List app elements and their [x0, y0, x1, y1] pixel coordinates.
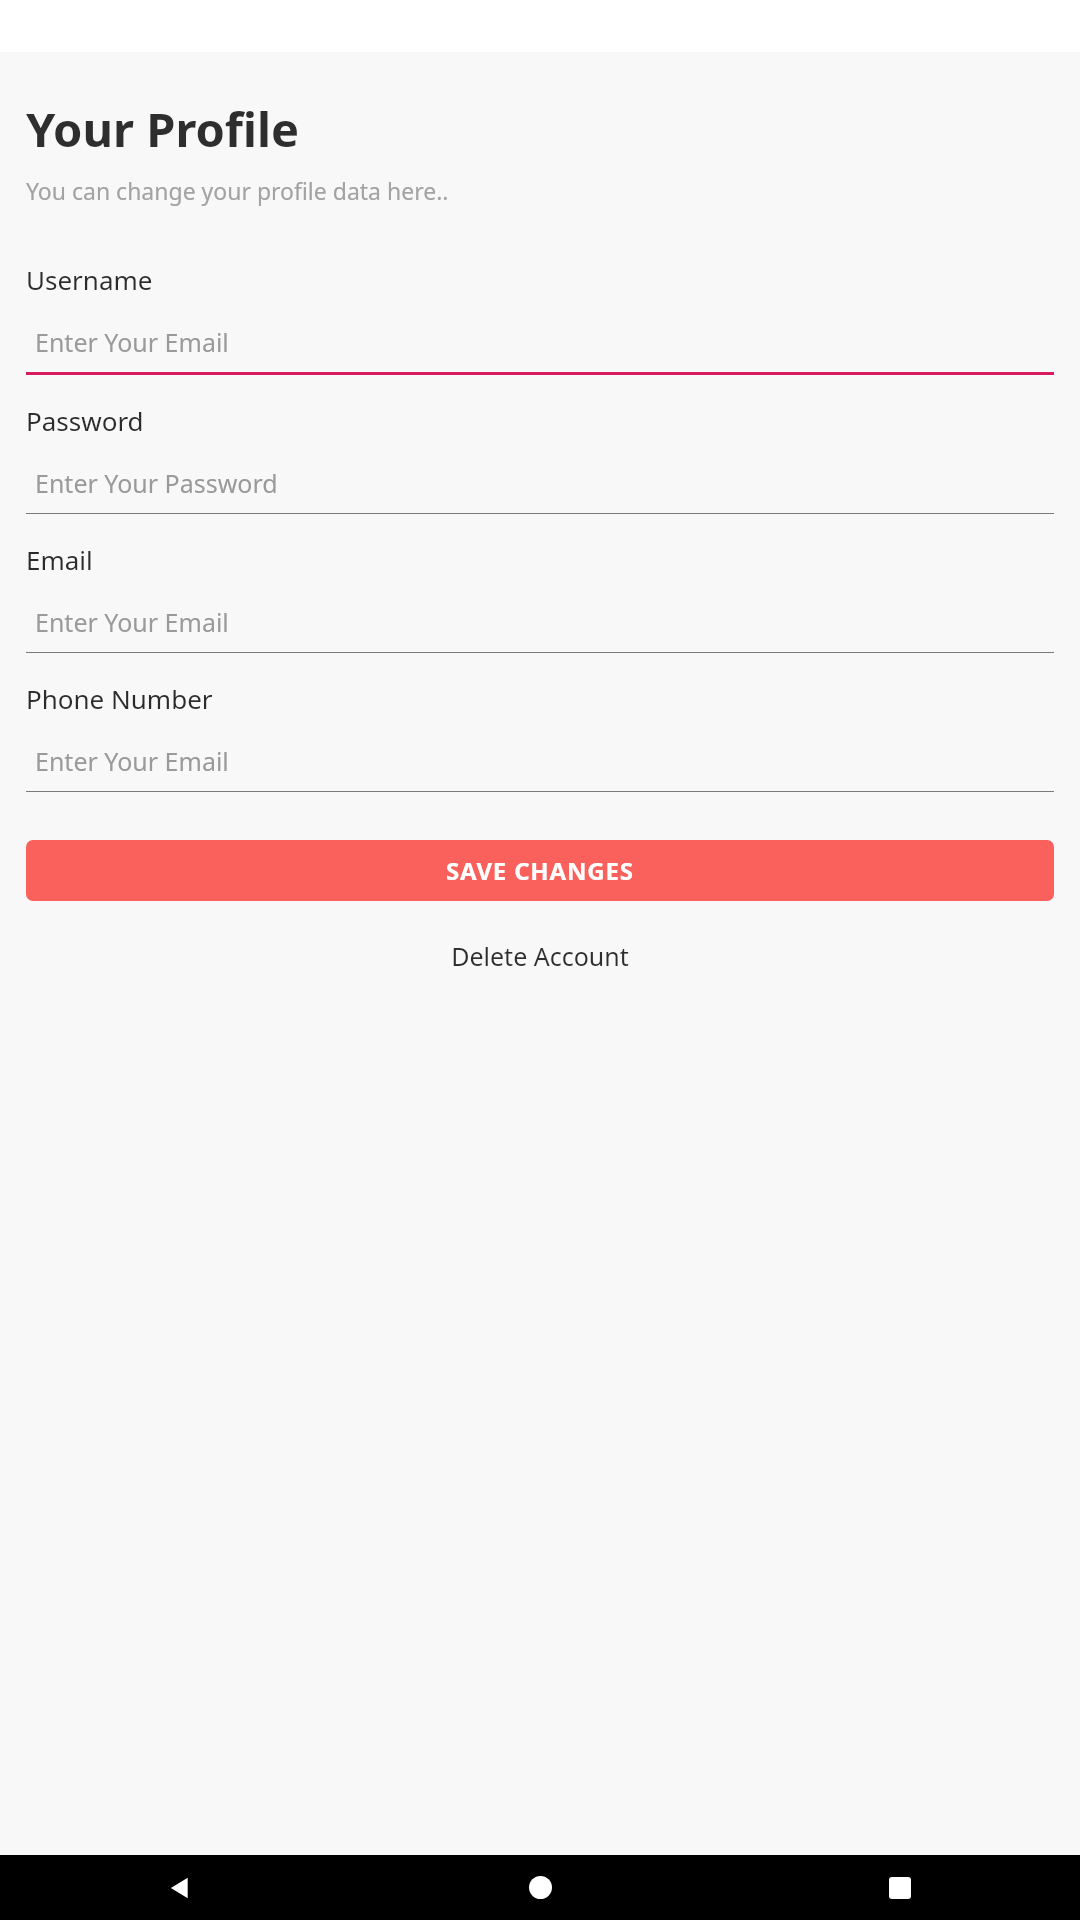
button[interactable]: Username	[26, 262, 1054, 375]
button[interactable]: Back	[0, 1855, 360, 1920]
staticText: Enter Your Email	[35, 744, 229, 778]
staticText: You can change your profile data here..	[26, 175, 449, 206]
staticText: Username	[26, 262, 153, 297]
button[interactable]: Password	[26, 403, 1054, 514]
button[interactable]: Phone Number	[26, 681, 1054, 792]
button[interactable]: Home	[360, 1855, 720, 1920]
staticText: Password	[26, 403, 144, 438]
staticText: Enter Your Email	[35, 605, 229, 639]
staticText: Your Profile	[26, 97, 300, 161]
staticText: Email	[26, 542, 93, 577]
staticText: Enter Your Email	[35, 325, 229, 359]
button[interactable]: Email	[26, 542, 1054, 653]
button[interactable]: Delete Account	[26, 933, 1054, 979]
button[interactable]: SAVE CHANGES	[26, 840, 1054, 901]
staticText: Phone Number	[26, 681, 213, 716]
staticText: Delete Account	[451, 939, 629, 973]
staticText: SAVE CHANGES	[446, 854, 634, 887]
staticText: Enter Your Password	[35, 466, 278, 500]
button[interactable]: Recent apps	[720, 1855, 1080, 1920]
